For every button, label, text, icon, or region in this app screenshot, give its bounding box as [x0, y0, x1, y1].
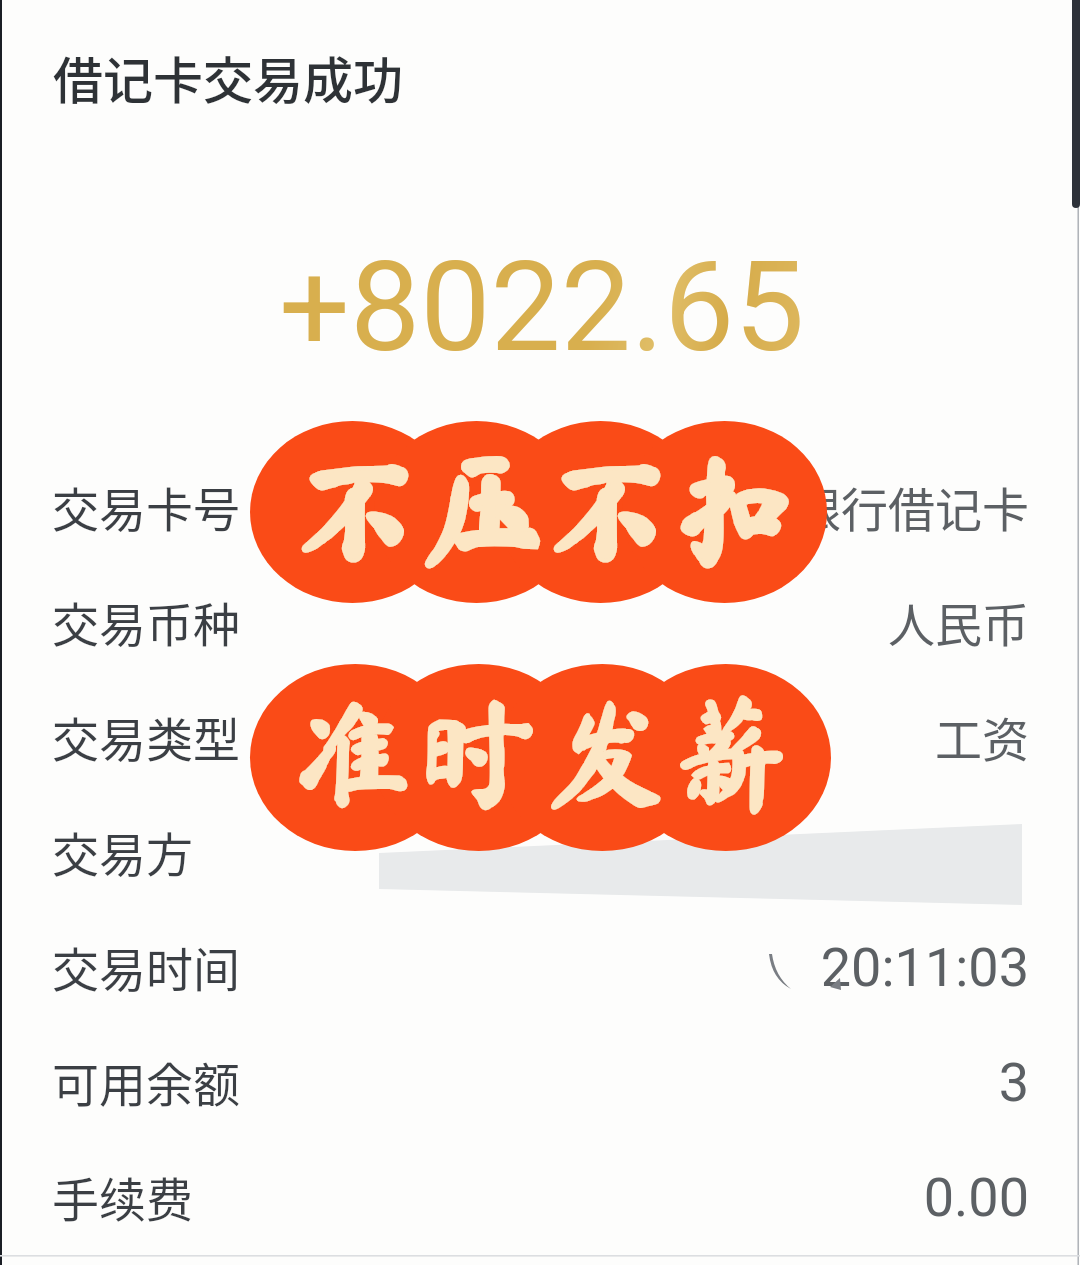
staticText: 不压不扣 — [297, 449, 801, 568]
staticText: +8022.65 — [279, 234, 805, 360]
staticText: 0.00 — [923, 1166, 1029, 1229]
staticText: 交易方 — [52, 817, 193, 885]
button[interactable]: 交易类型 — [0, 678, 1080, 793]
staticText: 3 — [998, 1051, 1029, 1114]
staticText: 20:11:03 — [820, 936, 1029, 999]
staticText: 不压不扣 — [297, 449, 801, 568]
button[interactable]: 手续费 — [0, 1138, 1080, 1253]
staticText: 交易时间 — [52, 932, 240, 1000]
staticText: 工资 — [935, 702, 1029, 770]
staticText: 交易类型 — [52, 702, 240, 770]
button[interactable]: 不压不扣 — [250, 421, 827, 603]
button[interactable]: 交易时间 — [0, 908, 1080, 1023]
button[interactable]: 交易币种 — [0, 563, 1080, 678]
staticText: 准时发薪 — [294, 692, 798, 811]
staticText: 借记卡交易成功 — [53, 41, 403, 111]
button[interactable]: 交易方 — [0, 793, 1080, 908]
staticText: 人民币 — [888, 587, 1029, 655]
staticText: 手续费 — [52, 1162, 193, 1230]
staticText: 交易币种 — [52, 587, 240, 655]
button[interactable]: 借记卡交易成功 — [53, 41, 403, 111]
button[interactable]: 可用余额 — [0, 1023, 1080, 1138]
staticText: 交易卡号 — [52, 472, 240, 540]
button[interactable]: 交易卡号 — [0, 448, 1080, 563]
staticText: 准时发薪 — [294, 692, 798, 811]
button[interactable]: 准时发薪 — [250, 664, 831, 851]
staticText: 可用余额 — [52, 1047, 240, 1115]
staticText: 农业银行借记卡 — [700, 472, 1029, 540]
